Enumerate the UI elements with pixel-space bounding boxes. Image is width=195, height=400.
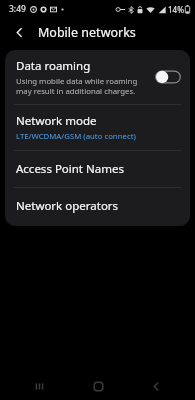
staticText: 14% [168, 4, 184, 15]
button[interactable]: Navigate up [8, 21, 30, 43]
button[interactable]: Back [136, 373, 176, 399]
button[interactable]: Network operators [5, 188, 190, 224]
staticText: Mobile networks [38, 24, 136, 41]
staticText: Using mobile data while roaming may resu… [16, 76, 149, 96]
button[interactable]: Network mode [5, 105, 190, 150]
staticText: LTE/WCDMA/GSM (auto connect) [16, 131, 136, 142]
button[interactable]: Home [78, 373, 118, 399]
button[interactable]: Data roaming [5, 50, 190, 104]
button[interactable]: Recent apps [19, 373, 59, 399]
staticText: 3:49 [9, 3, 26, 15]
button[interactable]: Access Point Names [5, 151, 190, 187]
staticText: Access Point Names [16, 161, 124, 177]
staticText: Network mode [16, 113, 97, 129]
button[interactable]: Data roaming toggle [155, 69, 181, 85]
staticText: Data roaming [16, 58, 91, 74]
staticText: Network operators [16, 198, 119, 214]
